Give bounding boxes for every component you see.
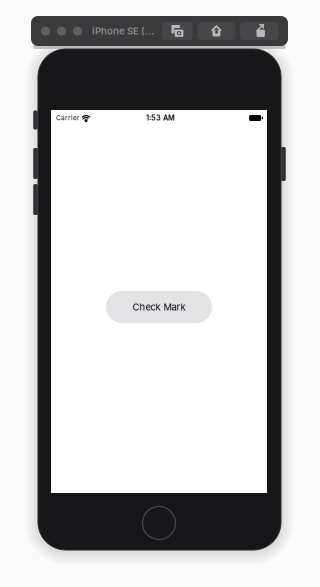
staticText: iPhone SE (… — [92, 25, 154, 37]
button[interactable] — [240, 22, 279, 40]
button[interactable]: Check Mark — [106, 291, 212, 323]
staticText: Check Mark — [132, 301, 185, 313]
button[interactable] — [162, 22, 193, 40]
button[interactable] — [197, 22, 235, 40]
staticText: Carrier — [56, 114, 79, 122]
staticText: 1:53 AM — [146, 114, 175, 122]
